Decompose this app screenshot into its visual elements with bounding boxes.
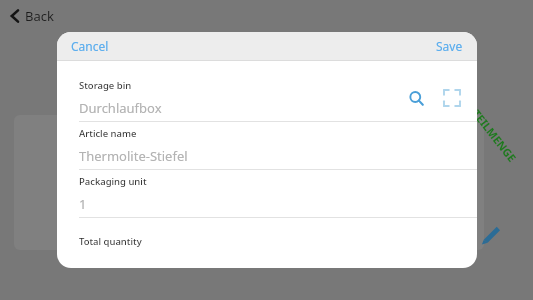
button[interactable]: Scan barcode xyxy=(437,83,467,113)
button[interactable]: Packaging unit xyxy=(57,170,477,217)
staticText: Article name xyxy=(79,127,137,140)
staticText: Packaging unit xyxy=(79,175,147,188)
button[interactable]: Article name xyxy=(57,122,477,169)
staticText: Cancel xyxy=(71,38,109,54)
staticText: TEILMENGE xyxy=(469,106,520,165)
staticText: Durchlaufbox xyxy=(79,99,162,117)
staticText: 1 xyxy=(79,195,87,213)
staticText: Total quantity xyxy=(79,235,142,248)
button[interactable]: Edit xyxy=(478,222,502,246)
button[interactable]: Search xyxy=(401,83,431,113)
button[interactable]: Storage bin xyxy=(57,74,477,121)
button[interactable]: Back xyxy=(6,4,58,28)
staticText: Back xyxy=(25,7,54,25)
staticText: Save xyxy=(436,38,463,54)
button[interactable]: Total quantity xyxy=(57,218,477,265)
button[interactable]: Save xyxy=(422,33,477,59)
staticText: Storage bin xyxy=(79,79,132,92)
staticText: Thermolite-Stiefel xyxy=(79,147,188,165)
button[interactable]: Cancel xyxy=(57,33,123,59)
